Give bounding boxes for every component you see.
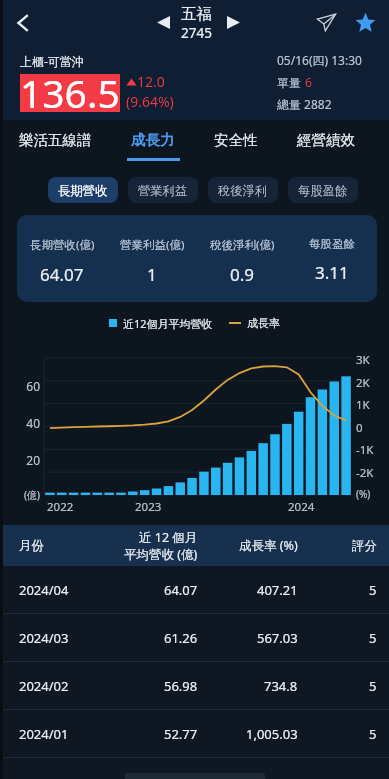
staticText: 長期營收 [58, 183, 108, 198]
staticText: 樂活五線譜 [19, 131, 92, 149]
staticText: 1K [356, 397, 370, 413]
staticText: 56.98 [164, 677, 198, 695]
staticText: 平均營收 (億) [124, 546, 198, 563]
button[interactable]: 營業利益 [128, 177, 198, 203]
staticText: 評分 [352, 538, 377, 554]
staticText: 近 12 個月 [139, 529, 198, 546]
button[interactable]: 2024/02 [0, 662, 389, 709]
staticText: 64.07 [40, 263, 84, 286]
staticText: 2024/03 [19, 629, 69, 647]
staticText: 12.0 [137, 72, 165, 91]
staticText: 稅後淨利(億) [210, 237, 275, 253]
staticText: 每股盈餘 [309, 237, 355, 251]
staticText: 成長率 (%) [239, 537, 298, 554]
staticText: 2023 [135, 499, 162, 515]
staticText: 成長力 [131, 131, 175, 149]
staticText: 60 [10, 378, 40, 394]
button[interactable]: Previous stock [151, 10, 176, 35]
staticText: 407.21 [257, 581, 298, 599]
button[interactable]: 2024/03 [0, 614, 389, 661]
staticText: 安全性 [214, 131, 258, 149]
staticText: 2745 [181, 24, 212, 42]
staticText: 0 [356, 420, 363, 436]
staticText: 單量 [277, 74, 305, 90]
staticText: 長期營收(億) [30, 237, 95, 253]
button[interactable]: 2024/04 [0, 566, 389, 613]
staticText: 20 [10, 452, 40, 468]
button[interactable]: 安全性 [200, 122, 272, 166]
staticText: 總量 2882 [277, 96, 332, 112]
staticText: 5 [369, 581, 377, 599]
staticText: 3.11 [315, 261, 349, 284]
staticText: (9.64%) [126, 92, 174, 111]
button[interactable]: Back [2, 2, 44, 44]
staticText: 136.5 [20, 66, 120, 119]
button[interactable]: 五福 [166, 4, 227, 42]
staticText: (億) [6, 488, 40, 502]
staticText: 3K [356, 352, 370, 368]
button[interactable]: Add to favorites [345, 2, 385, 42]
staticText: 2K [356, 375, 370, 391]
staticText: 734.8 [264, 677, 298, 695]
staticText: 0.9 [230, 263, 255, 286]
button[interactable]: Next stock [221, 10, 246, 35]
button[interactable]: 成長力 [118, 122, 188, 166]
staticText: 5 [369, 677, 377, 695]
staticText: (%) [356, 487, 371, 501]
staticText: 2022 [47, 499, 74, 515]
staticText: 05/16(四) 13:30 [277, 52, 362, 68]
staticText: 61.26 [164, 629, 198, 647]
button[interactable]: 每股盈餘 [288, 177, 358, 203]
staticText: 5 [369, 725, 377, 743]
button[interactable]: Share [306, 2, 346, 42]
staticText: 6 [305, 74, 312, 90]
staticText: 五福 [181, 4, 212, 24]
staticText: 近12個月平均營收 [123, 316, 213, 331]
staticText: 567.03 [257, 629, 298, 647]
staticText: 1 [147, 263, 157, 286]
staticText: 經營績效 [297, 131, 355, 149]
staticText: 成長率 [247, 316, 280, 330]
staticText: 月份 [19, 538, 44, 554]
button[interactable]: 2024/01 [0, 710, 389, 757]
staticText: 2024 [288, 499, 315, 515]
staticText: 營業利益(億) [120, 237, 185, 253]
staticText: 稅後淨利 [218, 183, 268, 198]
staticText: 64.07 [164, 581, 198, 599]
staticText: 5 [369, 629, 377, 647]
staticText: 1,005.03 [246, 725, 298, 743]
staticText: 52.77 [164, 725, 198, 743]
button[interactable]: 經營績效 [284, 122, 368, 166]
staticText: 2024/02 [19, 677, 69, 695]
staticText: 2024/01 [19, 725, 69, 743]
button[interactable]: 樂活五線譜 [8, 122, 102, 166]
button[interactable]: 稅後淨利 [208, 177, 278, 203]
staticText: -1K [356, 442, 374, 458]
staticText: 2024/04 [19, 581, 69, 599]
staticText: -2K [356, 465, 374, 481]
staticText: 營業利益 [138, 183, 188, 198]
staticText: 每股盈餘 [298, 183, 348, 198]
staticText: 40 [10, 415, 40, 431]
button[interactable]: 長期營收 [48, 177, 118, 203]
staticText: 上櫃-可當沖 [20, 53, 84, 69]
